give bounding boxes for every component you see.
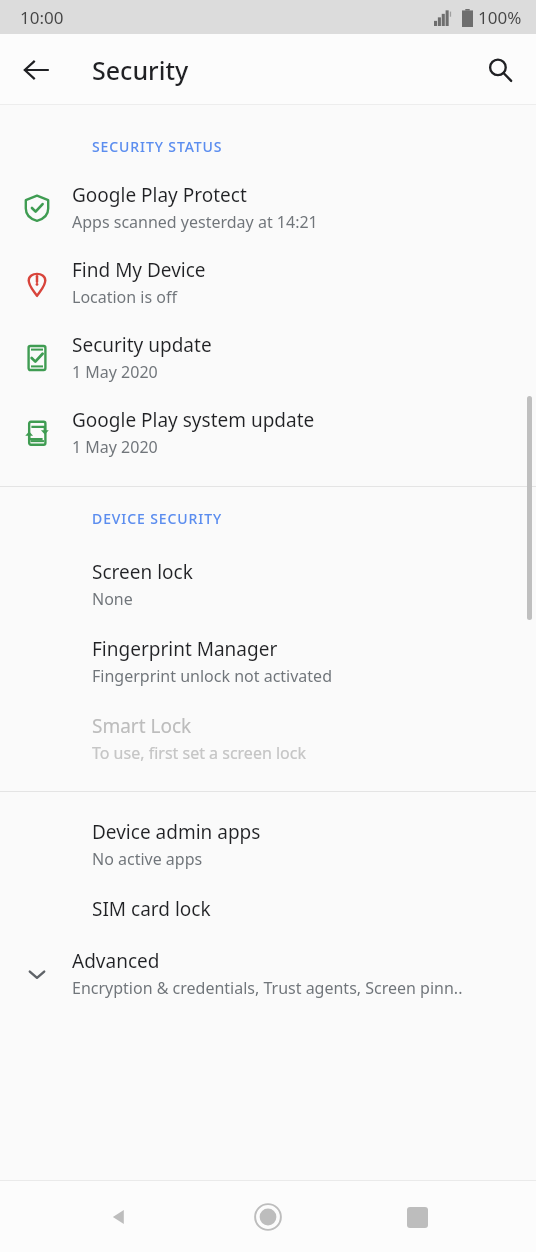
staticText: Apps scanned yesterday at 14:21 <box>72 211 318 233</box>
button[interactable]: Back <box>89 1187 149 1247</box>
staticText: Encryption & credentials, Trust agents, … <box>72 977 463 999</box>
staticText: 10:00 <box>20 6 64 29</box>
button[interactable]: Find My Device <box>0 245 536 320</box>
button[interactable]: SIM card lock <box>0 883 536 935</box>
staticText: Fingerprint Manager <box>92 636 278 662</box>
button[interactable]: Screen lock <box>0 546 536 623</box>
button[interactable]: Search <box>476 46 524 94</box>
staticText: Smart Lock <box>92 713 192 739</box>
staticText: No active apps <box>92 848 203 870</box>
button[interactable]: Device admin apps <box>0 806 536 883</box>
staticText: To use, first set a screen lock <box>92 742 307 764</box>
button[interactable]: Home <box>238 1187 298 1247</box>
button[interactable]: Security update <box>0 320 536 395</box>
button[interactable]: Fingerprint Manager <box>0 623 536 700</box>
staticText: Fingerprint unlock not activated <box>92 665 332 687</box>
staticText: 1 May 2020 <box>72 436 158 458</box>
staticText: Device admin apps <box>92 819 261 845</box>
button[interactable]: Recent apps <box>387 1187 447 1247</box>
button[interactable]: Back <box>12 46 60 94</box>
button[interactable]: Google Play Protect <box>0 170 536 245</box>
staticText: Location is off <box>72 286 177 308</box>
staticText: Security <box>92 53 189 87</box>
button[interactable]: Advanced <box>0 935 536 1012</box>
staticText: None <box>92 588 133 610</box>
staticText: Google Play system update <box>72 407 315 433</box>
staticText: Advanced <box>72 948 160 974</box>
staticText: Screen lock <box>92 559 193 585</box>
staticText: SIM card lock <box>92 896 211 922</box>
button[interactable]: Smart Lock <box>0 700 536 777</box>
staticText: Google Play Protect <box>72 182 247 208</box>
staticText: SECURITY STATUS <box>92 137 223 156</box>
button[interactable]: Google Play system update <box>0 395 536 470</box>
staticText: DEVICE SECURITY <box>92 509 222 528</box>
staticText: 1 May 2020 <box>72 361 158 383</box>
staticText: Find My Device <box>72 257 206 283</box>
staticText: Security update <box>72 332 212 358</box>
staticText: 100% <box>478 6 522 29</box>
